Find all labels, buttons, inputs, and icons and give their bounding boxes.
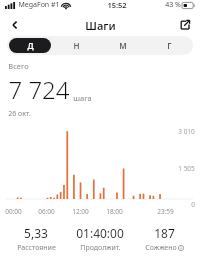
staticText: 0 (191, 200, 195, 209)
button[interactable]: М (101, 38, 144, 53)
staticText: Г (167, 40, 172, 51)
staticText: 12:00 (72, 207, 89, 216)
staticText: Д (27, 40, 34, 51)
staticText: 06:00 (38, 207, 55, 216)
button[interactable]: 187 (132, 225, 196, 253)
staticText: 1 505 (178, 164, 195, 173)
staticText: Шаги (85, 18, 116, 33)
button[interactable]: 01:40:00 (68, 225, 132, 253)
button[interactable]: Н (55, 38, 97, 53)
staticText: MegaFon #1 (18, 0, 60, 10)
staticText: 00:00 (5, 207, 22, 216)
staticText: Продолжит. (80, 243, 121, 253)
staticText: Н (73, 40, 80, 51)
staticText: Расстояние (17, 243, 56, 253)
staticText: 26 окт. (8, 109, 31, 119)
staticText: 3 010 (178, 127, 195, 136)
staticText: М (119, 40, 127, 51)
button[interactable]: Back (6, 16, 24, 34)
staticText: 18:00 (106, 207, 123, 216)
button[interactable]: Д (9, 38, 51, 53)
staticText: 5,33 (24, 225, 48, 241)
staticText: 15:52 (107, 0, 127, 10)
staticText: 43 % (165, 0, 181, 10)
button[interactable]: 5,33 (4, 225, 68, 253)
staticText: 23:59 (157, 207, 174, 216)
staticText: шага (73, 93, 92, 103)
button[interactable]: Share (176, 16, 194, 34)
staticText: Всего (8, 61, 29, 71)
staticText: 01:40:00 (76, 225, 124, 241)
staticText: 7 724 (8, 73, 70, 106)
staticText: Сожжено (145, 243, 177, 253)
staticText: 187 (154, 225, 175, 241)
button[interactable]: Г (148, 38, 191, 53)
